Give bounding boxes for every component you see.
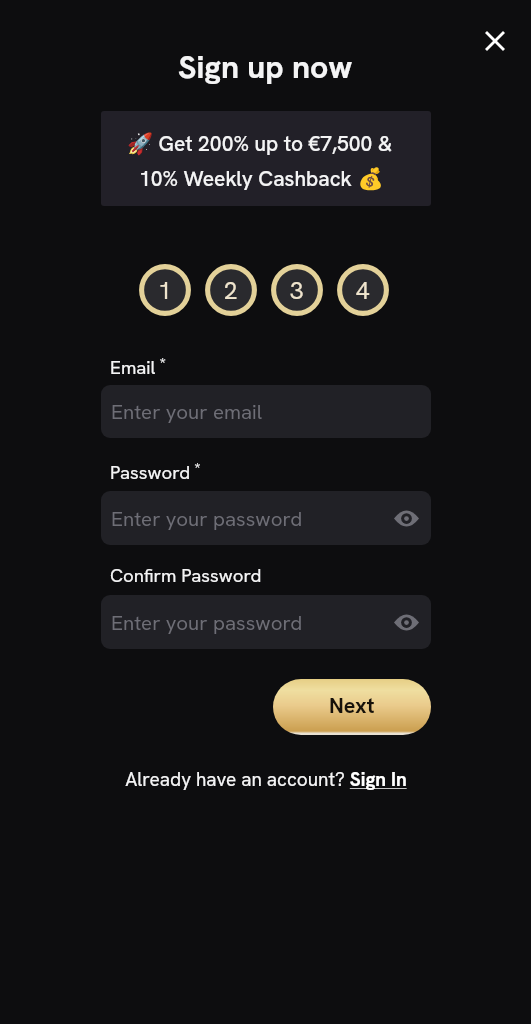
staticText: Sign up now: [178, 46, 353, 88]
staticText: 2: [224, 275, 238, 306]
button[interactable]: 1: [139, 264, 191, 316]
staticText: 4: [356, 275, 370, 306]
button[interactable]: Next: [273, 679, 431, 735]
button[interactable]: Show password: [389, 605, 423, 639]
button[interactable]: Already have an account? Sign In: [119, 763, 413, 796]
button[interactable]: 4: [337, 264, 389, 316]
button[interactable]: Enter your password: [101, 595, 431, 649]
staticText: Enter your password: [111, 505, 303, 532]
staticText: 1: [158, 275, 172, 306]
staticText: 10% Weekly Cashback 💰: [139, 165, 384, 192]
button[interactable]: Close: [473, 19, 517, 63]
staticText: 🚀 Get 200% up to €7,500 &: [127, 130, 393, 157]
staticText: 3: [290, 275, 304, 306]
staticText: Next: [329, 691, 375, 719]
staticText: Password *: [110, 458, 201, 484]
button[interactable]: Show password: [389, 501, 423, 535]
button[interactable]: Enter your password: [101, 491, 431, 545]
button[interactable]: Enter your email: [101, 385, 431, 438]
staticText: Already have an account? Sign In: [125, 767, 407, 792]
button[interactable]: 2: [205, 264, 257, 316]
button[interactable]: 3: [271, 264, 323, 316]
staticText: Confirm Password: [110, 563, 262, 587]
staticText: Email *: [110, 353, 166, 379]
staticText: Enter your password: [111, 609, 303, 636]
staticText: Enter your email: [111, 398, 263, 425]
